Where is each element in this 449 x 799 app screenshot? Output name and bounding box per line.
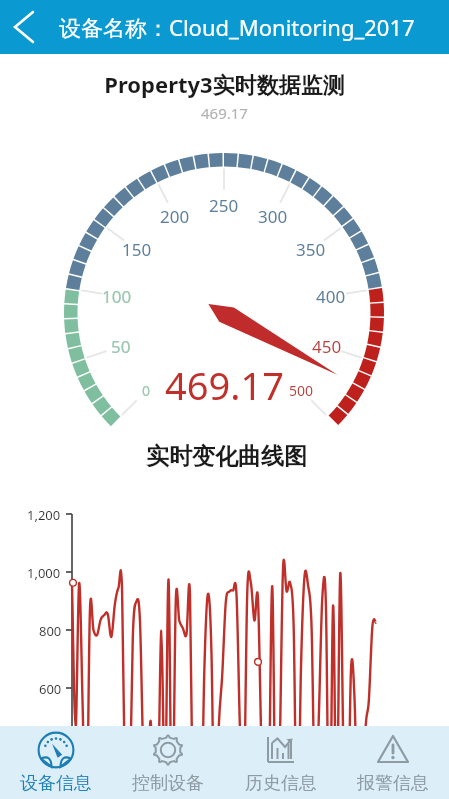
staticText: Property3实时数据监测 (104, 69, 345, 99)
staticText: 1,200 (27, 506, 61, 524)
staticText: 469.17 (201, 103, 248, 123)
staticText: 250 (209, 194, 239, 217)
staticText: 实时变化曲线图 (146, 442, 307, 471)
button[interactable]: Back (0, 0, 48, 54)
staticText: 报警信息 (357, 772, 429, 795)
staticText: 300 (258, 205, 288, 228)
staticText: 400 (316, 285, 346, 308)
staticText: 1,000 (27, 564, 61, 582)
button[interactable]: 历史信息 (225, 726, 337, 799)
staticText: 469.17 (165, 359, 284, 411)
staticText: 设备名称：Cloud_Monitoring_2017 (59, 12, 415, 42)
staticText: 800 (39, 622, 62, 640)
staticText: 500 (289, 381, 314, 400)
staticText: 历史信息 (245, 772, 317, 795)
button[interactable]: 设备信息 (0, 726, 112, 799)
staticText: 600 (39, 680, 62, 698)
staticText: 200 (160, 205, 190, 228)
button[interactable]: 控制设备 (112, 726, 224, 799)
staticText: 100 (102, 285, 132, 308)
staticText: 450 (312, 335, 342, 358)
button[interactable]: 报警信息 (337, 726, 449, 799)
staticText: 350 (296, 238, 326, 261)
staticText: 50 (111, 335, 131, 358)
staticText: 控制设备 (132, 772, 204, 795)
staticText: 0 (142, 381, 151, 400)
staticText: 设备信息 (20, 772, 92, 795)
staticText: 150 (122, 238, 152, 261)
